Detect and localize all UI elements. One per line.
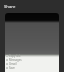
staticText: Save	[9, 66, 15, 70]
staticText: Copy link	[9, 54, 21, 58]
button[interactable]: Gmail	[5, 62, 59, 66]
staticText: Gmail	[9, 62, 17, 66]
button[interactable]: Copy link	[5, 54, 59, 58]
button[interactable]: Messages	[5, 58, 59, 62]
staticText: Share	[4, 4, 16, 10]
button[interactable]: Share	[0, 0, 64, 13]
button[interactable]: Save	[5, 66, 59, 70]
staticText: Messages	[9, 58, 22, 62]
